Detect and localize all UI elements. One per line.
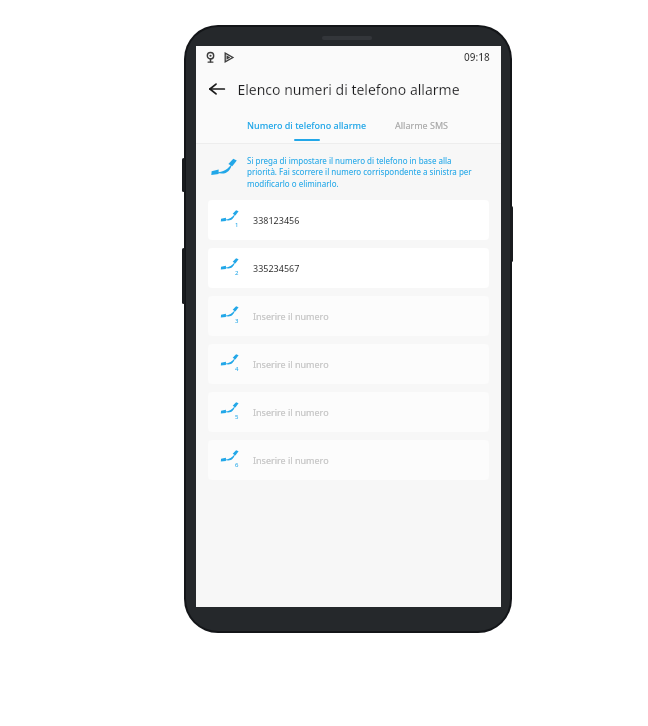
staticText: Si prega di impostare il numero di telef… [247, 155, 481, 190]
staticText: Allarme SMS [395, 119, 449, 131]
staticText: 4 [235, 365, 239, 373]
staticText: 2 [235, 269, 239, 277]
button[interactable]: Numero di telefono allarme [238, 110, 376, 143]
button[interactable]: 4 [208, 344, 489, 384]
staticText: Numero di telefono allarme [247, 119, 367, 131]
button[interactable]: 5 [208, 392, 489, 432]
staticText: Elenco numeri di telefono allarme [237, 80, 460, 99]
staticText: 335234567 [253, 262, 300, 274]
staticText: 1 [235, 221, 239, 229]
staticText: 09:18 [464, 50, 490, 64]
staticText: Inserire il numero [253, 310, 329, 322]
staticText: Inserire il numero [253, 406, 329, 418]
button[interactable]: 1 [208, 200, 489, 240]
staticText: Inserire il numero [253, 454, 329, 466]
staticText: 3 [235, 317, 239, 325]
staticText: 5 [235, 413, 239, 421]
button[interactable]: Back [201, 73, 233, 105]
button[interactable]: 6 [208, 440, 489, 480]
staticText: 338123456 [253, 214, 300, 226]
staticText: 6 [235, 461, 239, 469]
button[interactable]: 2 [208, 248, 489, 288]
staticText: Inserire il numero [253, 358, 329, 370]
button[interactable]: 3 [208, 296, 489, 336]
button[interactable]: Allarme SMS [384, 110, 460, 143]
